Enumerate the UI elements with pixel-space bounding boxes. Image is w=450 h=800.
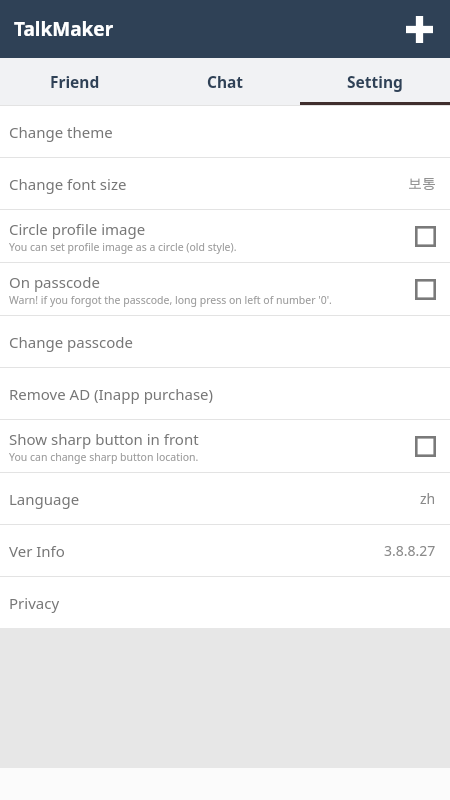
button[interactable]: Privacy xyxy=(0,577,450,628)
staticText: Change passcode xyxy=(9,332,133,352)
button[interactable]: Change theme xyxy=(0,106,450,157)
staticText: You can set profile image as a circle (o… xyxy=(9,240,237,254)
button[interactable]: Remove AD (Inapp purchase) xyxy=(0,368,450,419)
button[interactable]: Show sharp button in front xyxy=(0,420,450,472)
staticText: Circle profile image xyxy=(9,219,146,239)
button[interactable]: Ver Info xyxy=(0,525,450,576)
staticText: Setting xyxy=(347,71,403,92)
staticText: Language xyxy=(9,489,80,509)
staticText: TalkMaker xyxy=(14,16,114,42)
staticText: Warn! if you forgot the passcode, long p… xyxy=(9,293,332,307)
staticText: Change theme xyxy=(9,122,113,142)
staticText: Chat xyxy=(207,71,244,92)
staticText: Friend xyxy=(50,71,100,92)
button[interactable]: Chat xyxy=(150,58,300,105)
button[interactable]: Setting xyxy=(300,58,450,105)
button[interactable]: Change font size xyxy=(0,158,450,209)
staticText: zh xyxy=(420,489,436,508)
staticText: 보통 xyxy=(408,175,436,193)
button[interactable]: Add xyxy=(397,7,441,51)
button[interactable]: On passcode xyxy=(0,263,450,315)
button[interactable]: Language xyxy=(0,473,450,524)
button[interactable]: Change passcode xyxy=(0,316,450,367)
staticText: Show sharp button in front xyxy=(9,429,199,449)
button[interactable]: Circle profile image xyxy=(0,210,450,262)
staticText: Change font size xyxy=(9,174,127,194)
staticText: 3.8.8.27 xyxy=(384,541,436,560)
staticText: On passcode xyxy=(9,272,100,292)
staticText: Ver Info xyxy=(9,541,65,561)
button[interactable]: Friend xyxy=(0,58,150,105)
staticText: You can change sharp button location. xyxy=(9,450,199,464)
staticText: Remove AD (Inapp purchase) xyxy=(9,384,214,404)
staticText: Privacy xyxy=(9,593,60,613)
